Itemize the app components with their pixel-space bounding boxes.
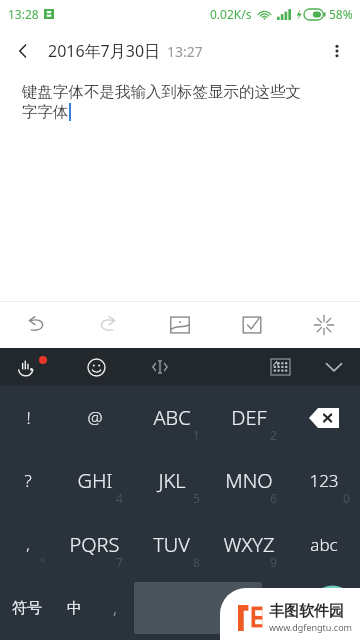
staticText: 4	[116, 490, 123, 506]
staticText: 键盘字体不是我输入到标签显示的这些文	[22, 82, 301, 102]
staticText: WXYZ	[223, 531, 275, 558]
button[interactable]: Move cursor	[128, 348, 192, 386]
button[interactable]: !	[0, 386, 56, 449]
staticText: 中	[67, 599, 82, 618]
staticText: 7	[116, 554, 123, 570]
staticText: 13:27	[167, 42, 203, 61]
button[interactable]: DEF	[210, 386, 287, 449]
button[interactable]: ?	[0, 449, 56, 512]
staticText: 123	[309, 469, 339, 492]
staticText: ,	[113, 598, 118, 618]
staticText: 符号	[12, 599, 42, 618]
staticText: MNO	[225, 467, 273, 494]
button[interactable]: Effects	[288, 302, 360, 348]
staticText: ,	[26, 534, 30, 554]
button[interactable]: JKL	[133, 449, 210, 512]
button[interactable]: Voice input	[0, 348, 64, 386]
staticText: @	[87, 406, 103, 429]
button[interactable]: ,	[0, 512, 56, 576]
button[interactable]: Enter	[309, 580, 356, 636]
button[interactable]: @	[56, 386, 133, 449]
button[interactable]: TUV	[133, 512, 210, 576]
button[interactable]: Symbols	[262, 576, 305, 640]
staticText: DEF	[231, 404, 267, 431]
staticText: 6	[270, 490, 277, 506]
staticText: PQRS	[69, 531, 120, 558]
button[interactable]: ,	[96, 576, 134, 640]
button[interactable]: Insert image	[144, 302, 216, 348]
staticText: ?	[24, 469, 32, 492]
button[interactable]: MNO	[210, 449, 287, 512]
staticText: 5	[193, 490, 200, 506]
staticText: 13:28	[8, 6, 39, 22]
staticText: 字字体	[22, 102, 69, 122]
button[interactable]: Hide keyboard	[308, 348, 360, 386]
button[interactable]: 中	[53, 576, 96, 640]
button[interactable]: Space	[134, 582, 262, 634]
staticText: ABC	[153, 404, 191, 431]
button[interactable]: Checklist	[216, 302, 288, 348]
staticText: abc	[310, 533, 338, 556]
button[interactable]: Switch keyboard layout	[252, 348, 308, 386]
staticText: 58%	[329, 6, 353, 22]
button[interactable]: 符号	[0, 576, 53, 640]
staticText: 丰图软件园	[269, 602, 344, 621]
button[interactable]: Undo	[0, 302, 72, 348]
staticText: 0.02K/s	[210, 6, 252, 22]
button[interactable]: 123	[287, 449, 360, 512]
button[interactable]: PQRS	[56, 512, 133, 576]
staticText: TUV	[153, 531, 190, 558]
button[interactable]: abc	[287, 512, 360, 576]
staticText: 2016年7月30日	[48, 40, 161, 62]
button[interactable]: Back	[0, 28, 46, 74]
staticText: www.dgfengtu.com	[269, 621, 353, 633]
staticText: 8	[193, 554, 200, 570]
button[interactable]: GHI	[56, 449, 133, 512]
button[interactable]: More options	[314, 28, 360, 74]
staticText: GHI	[77, 467, 113, 494]
button[interactable]: ABC	[133, 386, 210, 449]
staticText: !	[26, 406, 31, 429]
staticText: 9	[270, 554, 277, 570]
staticText: JKL	[158, 467, 186, 494]
staticText: °	[40, 554, 46, 570]
button[interactable]: Emoji	[64, 348, 128, 386]
staticText: 2	[270, 427, 277, 443]
button[interactable]: Redo	[72, 302, 144, 348]
staticText: 1	[193, 427, 200, 443]
button[interactable]: WXYZ	[210, 512, 287, 576]
button[interactable]: Backspace	[287, 386, 360, 449]
staticText: 0	[343, 490, 350, 506]
